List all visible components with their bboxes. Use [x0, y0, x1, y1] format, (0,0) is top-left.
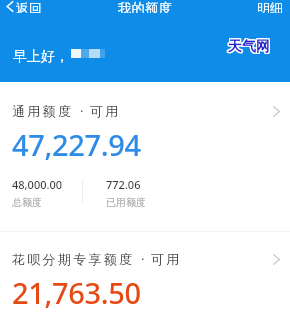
staticText: 天气网 — [229, 39, 271, 57]
staticText: 天气网 — [227, 37, 269, 55]
staticText: 总额度 — [12, 196, 42, 209]
button[interactable]: 通用额度 — [0, 82, 290, 164]
staticText: 天气网 — [227, 38, 269, 56]
staticText: 21,763.50 — [12, 273, 141, 312]
staticText: 通用额度 — [12, 103, 74, 119]
staticText: 天气网 — [228, 39, 270, 57]
staticText: · — [141, 250, 145, 268]
button[interactable]: 花呗分期专享额度 — [0, 232, 290, 312]
staticText: 772.06 — [106, 177, 141, 192]
button[interactable]: 明细 — [249, 0, 290, 13]
staticText: 可用 — [151, 251, 182, 267]
staticText: 花呗分期专享额度 — [12, 251, 135, 267]
staticText: 已用额度 — [106, 196, 146, 209]
staticText: 明细 — [257, 0, 283, 13]
staticText: 天气网 — [229, 37, 271, 55]
staticText: 天气网 — [228, 37, 270, 55]
staticText: 天气网 — [229, 38, 271, 56]
staticText: 早上好， — [13, 48, 69, 66]
staticText: 天气网 — [227, 39, 269, 57]
staticText: 47,227.94 — [12, 125, 141, 164]
other: Open details — [272, 254, 281, 265]
staticText: 我的额度 — [118, 0, 172, 13]
staticText: 可用 — [90, 103, 121, 119]
button[interactable]: 返回 — [4, 0, 48, 13]
staticText: 返回 — [16, 0, 42, 13]
other: Open details — [272, 106, 281, 117]
staticText: · — [80, 102, 84, 120]
staticText: 48,000.00 — [12, 177, 63, 192]
staticText: 天气网 — [228, 38, 270, 56]
